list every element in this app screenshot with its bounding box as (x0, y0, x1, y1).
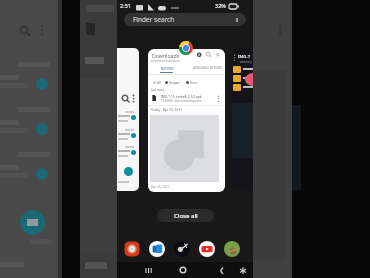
staticText: Apr 23, 2021 (151, 185, 170, 189)
staticText: IMG-7 (238, 54, 251, 60)
staticText: Images (169, 81, 180, 85)
staticText: 32% (215, 2, 226, 9)
staticText: Downloads (152, 52, 180, 59)
button[interactable]: Images (165, 80, 180, 85)
staticText: IMG-7.15_emheB_2.5.0.apk (161, 95, 202, 99)
staticText: All (157, 81, 161, 85)
button[interactable]: All (153, 80, 161, 85)
staticText: Finder search (133, 15, 175, 24)
staticText: directory (240, 60, 252, 64)
button[interactable]: Camera (124, 241, 140, 257)
staticText: Just now (151, 88, 164, 92)
button[interactable]: Maps (224, 241, 240, 257)
button[interactable]: Assistant (237, 264, 249, 276)
button[interactable]: Outlook (149, 241, 165, 257)
button[interactable]: Recents (142, 264, 154, 276)
button[interactable]: Downloads (148, 49, 225, 192)
staticText: Docs (190, 81, 198, 85)
button[interactable]: Docs (186, 80, 198, 85)
button[interactable]: YouTube (199, 241, 215, 257)
button[interactable]: Photo editor (174, 241, 190, 257)
button[interactable]: IMG-7 (232, 48, 253, 191)
staticText: 2:51 (120, 2, 131, 9)
staticText: RECENT (161, 66, 174, 71)
staticText: 19.84 MB · www.somethingx.com (161, 99, 202, 103)
button[interactable]: Close all (157, 209, 214, 222)
button[interactable]: Home (177, 264, 189, 276)
button[interactable]: Finder search (124, 13, 246, 26)
button[interactable] (117, 48, 139, 191)
staticText: AVAILABLE OFFLINE (193, 66, 223, 70)
staticText: Today · Apr 26, 2021 (151, 107, 183, 111)
button[interactable]: Back (216, 264, 228, 276)
staticText: Close all (174, 212, 198, 220)
other: Voice search (234, 17, 240, 23)
